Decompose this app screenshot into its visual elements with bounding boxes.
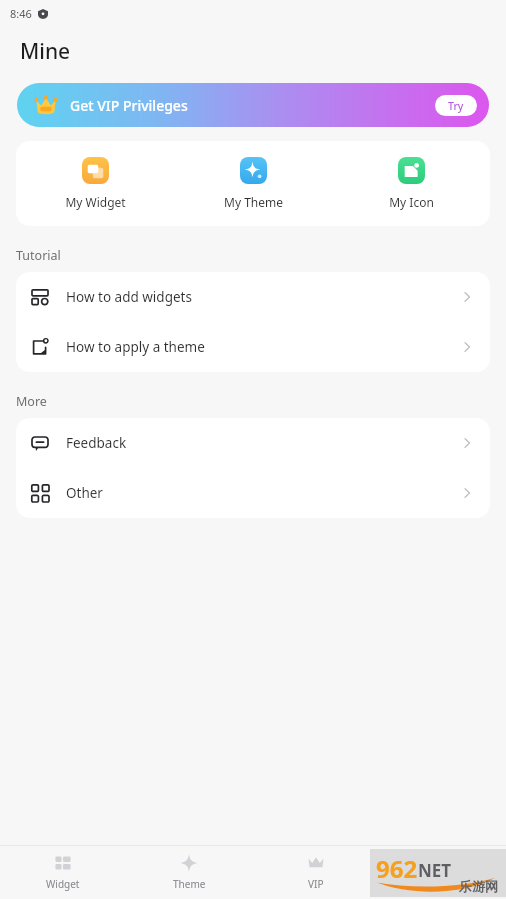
staticText: My Widget [65, 194, 126, 210]
button[interactable]: My Theme [174, 157, 332, 210]
staticText: Mine [20, 37, 71, 66]
staticText: How to apply a theme [66, 338, 205, 356]
button[interactable]: VIP [252, 846, 379, 899]
button[interactable]: Feedback [16, 418, 490, 468]
staticText: 8:46 [10, 6, 32, 21]
staticText: Get VIP Privileges [70, 96, 188, 115]
staticText: 962 [376, 852, 418, 885]
button[interactable]: Other [16, 468, 490, 518]
staticText: My Theme [224, 194, 283, 210]
staticText: 乐游网 [459, 878, 498, 894]
staticText: How to add widgets [66, 288, 192, 306]
staticText: Try [448, 99, 464, 113]
staticText: Other [66, 484, 103, 502]
button[interactable]: Mine [379, 846, 506, 899]
button[interactable]: Widget [0, 846, 126, 899]
button[interactable]: Theme [126, 846, 252, 899]
staticText: Feedback [66, 434, 127, 452]
button[interactable]: Get VIP Privileges [17, 83, 489, 127]
staticText: VIP [308, 877, 324, 891]
staticText: My Icon [389, 194, 434, 210]
button[interactable]: My Icon [332, 157, 490, 210]
button[interactable]: Try [435, 95, 477, 116]
button[interactable]: How to add widgets [16, 272, 490, 322]
staticText: NET [418, 859, 452, 882]
staticText: Mine [431, 877, 455, 891]
button[interactable]: My Widget [16, 157, 174, 210]
staticText: More [16, 393, 47, 410]
staticText: Theme [173, 877, 206, 891]
button[interactable]: How to apply a theme [16, 322, 490, 372]
staticText: Widget [46, 877, 80, 891]
staticText: Tutorial [16, 247, 61, 264]
